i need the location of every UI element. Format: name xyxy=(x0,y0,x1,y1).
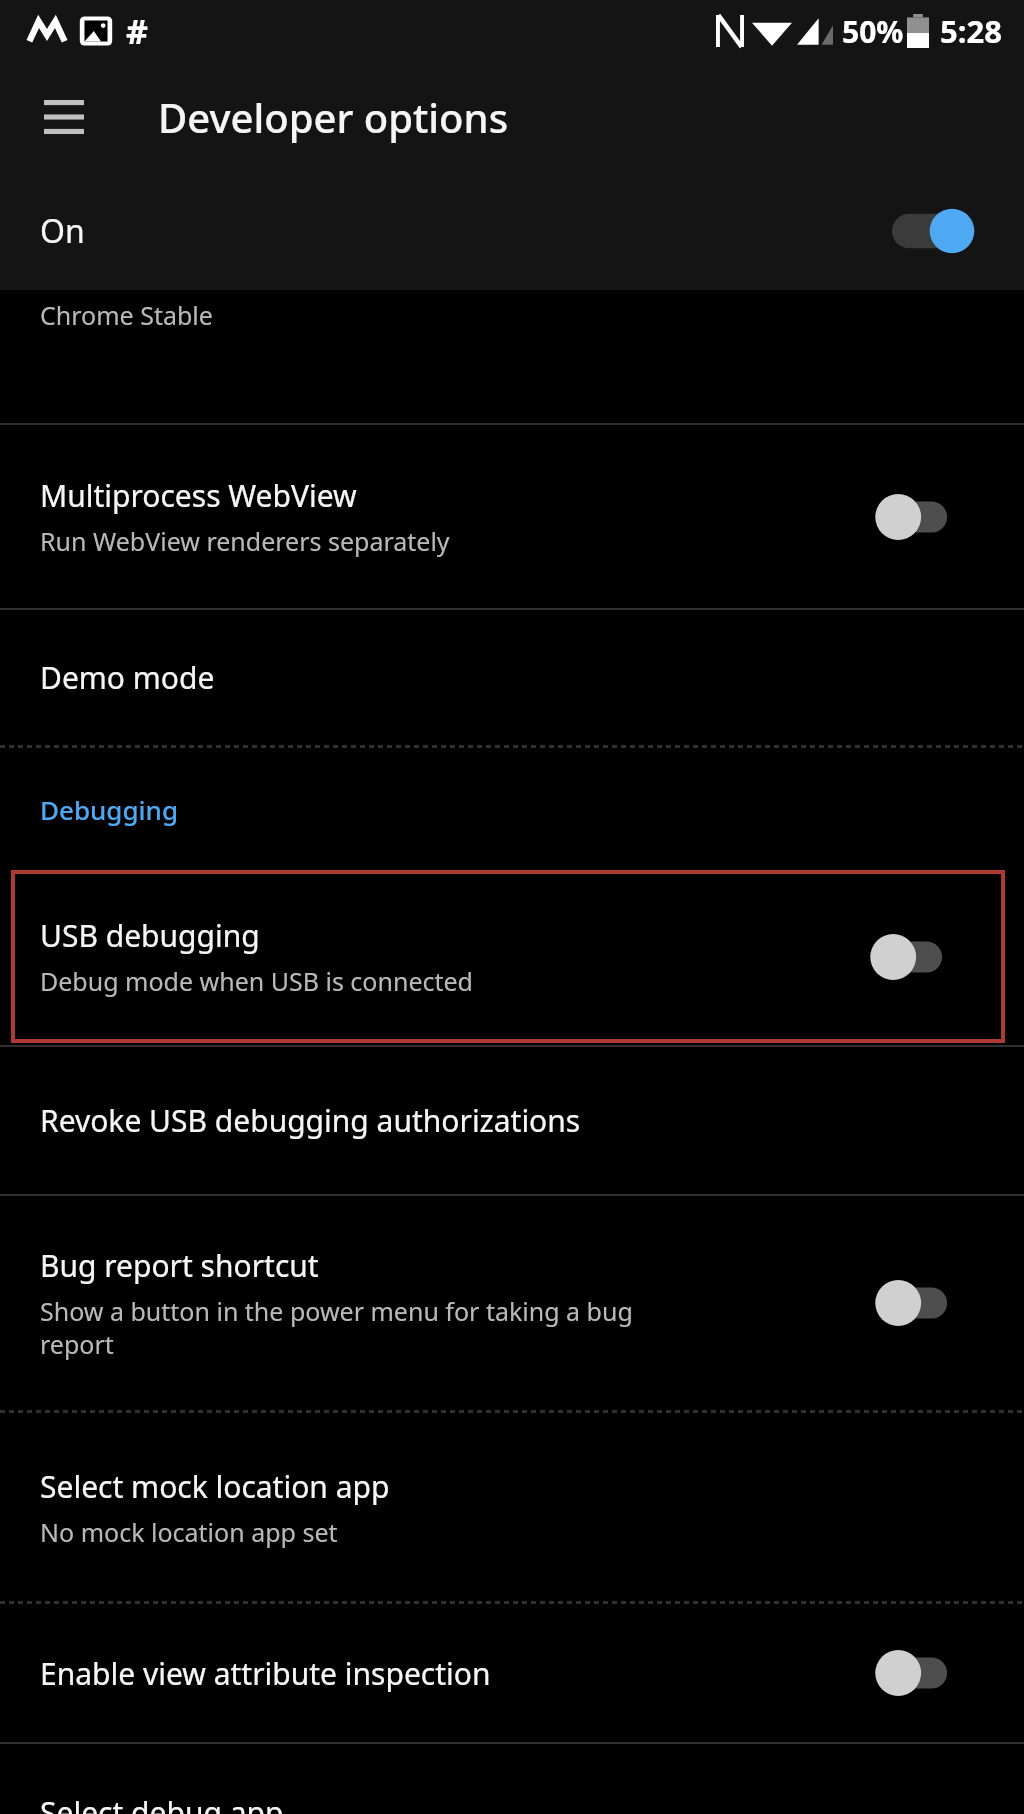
staticText: Demo mode xyxy=(40,657,215,698)
button[interactable]: Enable view attribute inspection xyxy=(0,1604,1024,1742)
staticText: Bug report shortcut xyxy=(40,1245,319,1286)
staticText: 50% xyxy=(842,11,904,52)
staticText: Show a button in the power menu for taki… xyxy=(40,1294,633,1361)
staticText: On xyxy=(40,209,85,253)
button[interactable]: Multiprocess WebView xyxy=(0,425,1024,608)
staticText: # xyxy=(126,8,148,54)
staticText: Enable view attribute inspection xyxy=(40,1653,491,1694)
button[interactable]: Chrome Stable xyxy=(0,290,1024,423)
staticText: No mock location app set xyxy=(40,1515,338,1549)
button[interactable]: Toggle setting xyxy=(870,486,964,548)
button[interactable]: Toggle setting xyxy=(870,1642,964,1704)
button[interactable]: USB debugging xyxy=(13,872,1003,1041)
staticText: Chrome Stable xyxy=(40,298,213,332)
staticText: Debug mode when USB is connected xyxy=(40,964,473,998)
button[interactable]: Open navigation drawer xyxy=(26,79,102,155)
staticText: Multiprocess WebView xyxy=(40,475,357,516)
staticText: Select debug app xyxy=(40,1792,284,1814)
staticText: Debugging xyxy=(40,792,179,827)
button[interactable]: Select debug app xyxy=(0,1744,1024,1814)
staticText: 5:28 xyxy=(940,10,1002,52)
button[interactable]: Toggle setting xyxy=(870,1272,964,1334)
staticText: USB debugging xyxy=(40,915,260,956)
button[interactable]: Revoke USB debugging authorizations xyxy=(0,1047,1024,1194)
staticText: Run WebView renderers separately xyxy=(40,524,450,558)
button[interactable]: Demo mode xyxy=(0,610,1024,745)
button[interactable]: Select mock location app xyxy=(0,1413,1024,1601)
staticText: Developer options xyxy=(158,90,509,144)
button[interactable]: Toggle setting xyxy=(865,926,959,988)
button[interactable]: Developer options enabled xyxy=(882,200,982,262)
staticText: Revoke USB debugging authorizations xyxy=(40,1100,581,1141)
staticText: Select mock location app xyxy=(40,1466,390,1507)
button[interactable]: Bug report shortcut xyxy=(0,1196,1024,1410)
button[interactable]: On xyxy=(0,172,1024,290)
